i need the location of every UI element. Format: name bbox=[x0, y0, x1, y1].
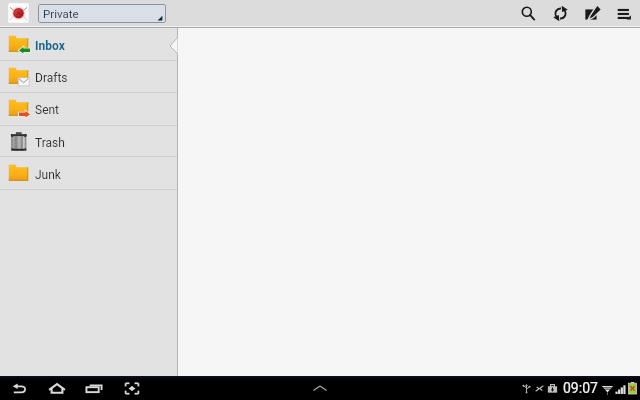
button[interactable]: Junk bbox=[0, 157, 178, 190]
button[interactable]: Trash bbox=[0, 125, 178, 157]
staticText: Private bbox=[43, 7, 79, 20]
button[interactable]: Sent bbox=[0, 93, 178, 126]
button[interactable]: Status bbox=[521, 376, 640, 400]
staticText: 09:07 bbox=[563, 380, 598, 396]
button[interactable]: Search bbox=[512, 0, 544, 26]
button[interactable]: Compose bbox=[576, 0, 608, 26]
button[interactable]: Screenshot bbox=[115, 376, 149, 400]
staticText: Inbox bbox=[35, 39, 65, 53]
button[interactable]: Back bbox=[2, 376, 36, 400]
staticText: Sent bbox=[35, 103, 60, 117]
staticText: Junk bbox=[35, 168, 61, 182]
button[interactable]: More options bbox=[608, 0, 640, 26]
button[interactable]: Inbox bbox=[0, 28, 178, 61]
button[interactable]: Recents bbox=[77, 376, 111, 400]
staticText: Drafts bbox=[35, 71, 68, 85]
button[interactable]: Drafts bbox=[0, 61, 178, 93]
button[interactable]: K-9 Mail bbox=[8, 3, 29, 23]
staticText: Trash bbox=[35, 136, 65, 150]
button[interactable]: Private bbox=[38, 4, 166, 23]
button[interactable]: Home bbox=[40, 376, 74, 400]
button[interactable]: Refresh bbox=[544, 0, 576, 26]
button[interactable]: Expand bbox=[305, 376, 335, 400]
